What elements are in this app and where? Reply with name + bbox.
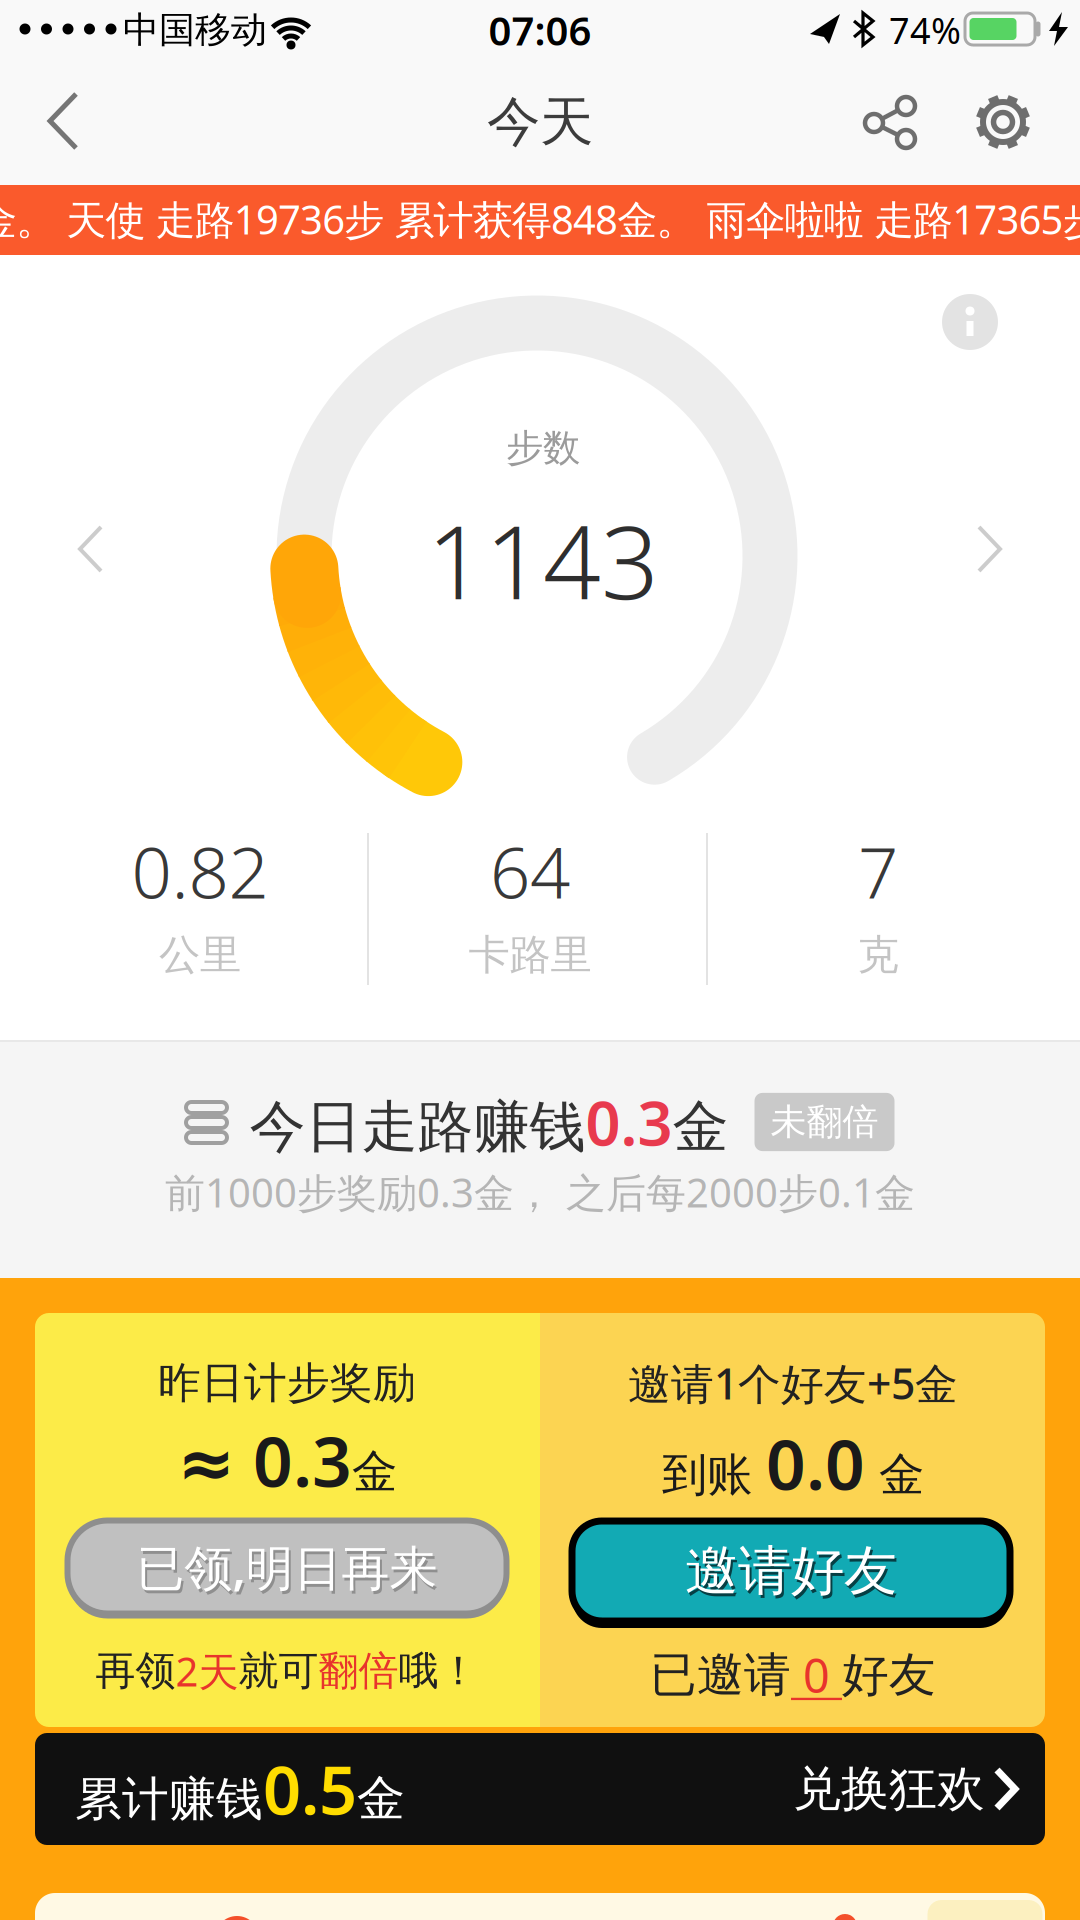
staticText: 7 — [858, 824, 898, 918]
staticText: 兑换狂欢 — [793, 1759, 985, 1818]
button[interactable]: Previous day — [70, 519, 114, 579]
button[interactable]: Back — [16, 68, 112, 174]
staticText: 07:06 — [488, 3, 591, 56]
staticText: 1143 — [427, 493, 659, 627]
staticText: 前1000步奖励0.3金， 之后每2000步0.1金 — [165, 1165, 915, 1218]
staticText: 金 — [672, 1093, 728, 1162]
staticText: 金 — [357, 1769, 405, 1828]
staticText: 已领,明日再来 — [138, 1538, 439, 1602]
button[interactable]: 邀请好友 — [572, 1521, 1010, 1621]
staticText: 金 — [865, 1447, 924, 1503]
staticText: 未翻倍 — [770, 1100, 878, 1144]
staticText: ≈ 0.3 — [177, 1414, 352, 1506]
staticText: 克 — [857, 930, 898, 980]
button[interactable]: 已领,明日再来 — [67, 1520, 506, 1613]
staticText: 中国移动 — [123, 8, 267, 52]
staticText: 金 — [352, 1444, 397, 1500]
staticText: 卡路里 — [468, 930, 591, 980]
button[interactable]: 累计赚钱 — [35, 1733, 1045, 1845]
staticText: 0 — [791, 1644, 842, 1706]
staticText: 累计赚钱 — [75, 1771, 263, 1828]
staticText: 邀请好友 — [687, 1541, 899, 1607]
staticText: 0.3 — [585, 1081, 672, 1163]
staticText: 74% — [889, 6, 961, 54]
staticText: 哦！ — [398, 1646, 478, 1695]
button[interactable]: Info — [942, 294, 998, 350]
staticText: 今天 — [487, 89, 593, 155]
staticText: 就可 — [238, 1646, 318, 1695]
staticText: 步数 — [506, 425, 580, 471]
staticText: 已邀请 — [650, 1646, 791, 1704]
staticText: 0.5 — [263, 1745, 357, 1833]
staticText: 已领,明日再来 — [136, 1535, 437, 1599]
staticText: 到账 — [662, 1447, 766, 1503]
staticText: 64 — [490, 824, 570, 918]
staticText: 好友 — [842, 1646, 936, 1704]
staticText: 邀请好友 — [685, 1538, 897, 1604]
staticText: 昨日计步奖励 — [158, 1357, 416, 1409]
staticText: 再领 — [95, 1646, 175, 1695]
staticText: 公里 — [159, 930, 241, 980]
staticText: 邀请1个好友+5金 — [628, 1355, 958, 1411]
staticText: 今日走路赚钱 — [249, 1093, 585, 1162]
staticText: 0.82 — [131, 824, 268, 918]
staticText: 0.0 — [766, 1417, 865, 1509]
staticText: 翻倍 — [318, 1646, 398, 1695]
staticText: 金。 天使 走路19736步 累计获得848金。 雨伞啦啦 走路17365步 累… — [0, 192, 1080, 245]
button[interactable]: Settings — [965, 84, 1041, 160]
button[interactable]: Next day — [966, 519, 1010, 579]
staticText: 2天 — [175, 1644, 238, 1697]
button[interactable]: Share — [854, 86, 926, 158]
